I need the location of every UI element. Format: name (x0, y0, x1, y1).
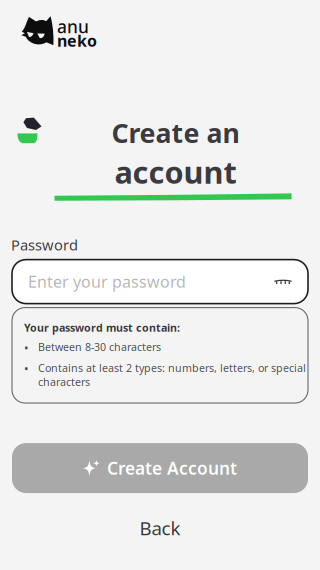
staticText: Between 8-30 characters (38, 340, 161, 354)
staticText: Create Account (107, 456, 237, 479)
staticText: • (24, 340, 29, 356)
staticText: • (24, 361, 29, 377)
staticText: Contains at least 2 types: numbers, lett… (38, 361, 306, 389)
button[interactable]: Back (0, 516, 320, 540)
staticText: Create an (111, 115, 239, 150)
staticText: Your password must contain: (24, 321, 180, 335)
staticText: anu (57, 15, 89, 38)
staticText: Back (139, 516, 180, 540)
staticText: Password (11, 235, 78, 255)
button[interactable]: Enter your password (12, 260, 308, 304)
staticText: account (114, 151, 236, 192)
staticText: Enter your password (28, 271, 186, 292)
staticText: neko (57, 30, 97, 51)
button[interactable]: Create Account (12, 443, 308, 493)
